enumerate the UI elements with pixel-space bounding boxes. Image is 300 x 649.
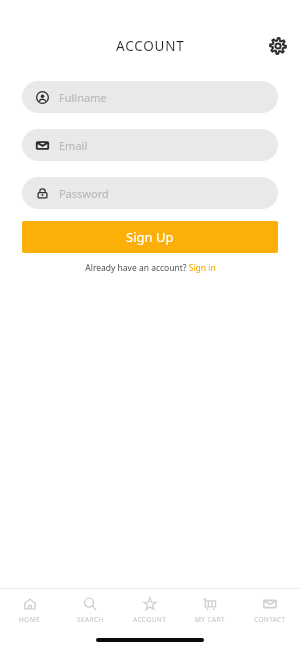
button[interactable]: Sign Up [22, 221, 278, 253]
button[interactable]: Already have an account? Sign in [85, 262, 216, 274]
staticText: MY CART [195, 615, 225, 624]
staticText: CONTACT [254, 615, 286, 624]
staticText: Sign Up [126, 228, 174, 246]
staticText: Password [59, 186, 109, 201]
button[interactable]: MY CART [180, 589, 240, 631]
staticText: ACCOUNT [116, 37, 185, 55]
staticText: Fullname [59, 90, 107, 105]
button[interactable]: Fullname [22, 81, 278, 113]
button[interactable]: ACCOUNT [120, 589, 180, 631]
staticText: Already have an account? Sign in [85, 262, 216, 274]
button[interactable]: Password [22, 177, 278, 209]
staticText: SEARCH [77, 615, 104, 624]
staticText: ACCOUNT [133, 615, 167, 624]
button[interactable]: Settings [263, 31, 293, 61]
button[interactable]: CONTACT [240, 589, 300, 631]
button[interactable]: Email [22, 129, 278, 161]
staticText: HOME [19, 615, 41, 624]
staticText: Email [59, 138, 88, 153]
button[interactable]: SEARCH [60, 589, 120, 631]
button[interactable]: HOME [0, 589, 60, 631]
